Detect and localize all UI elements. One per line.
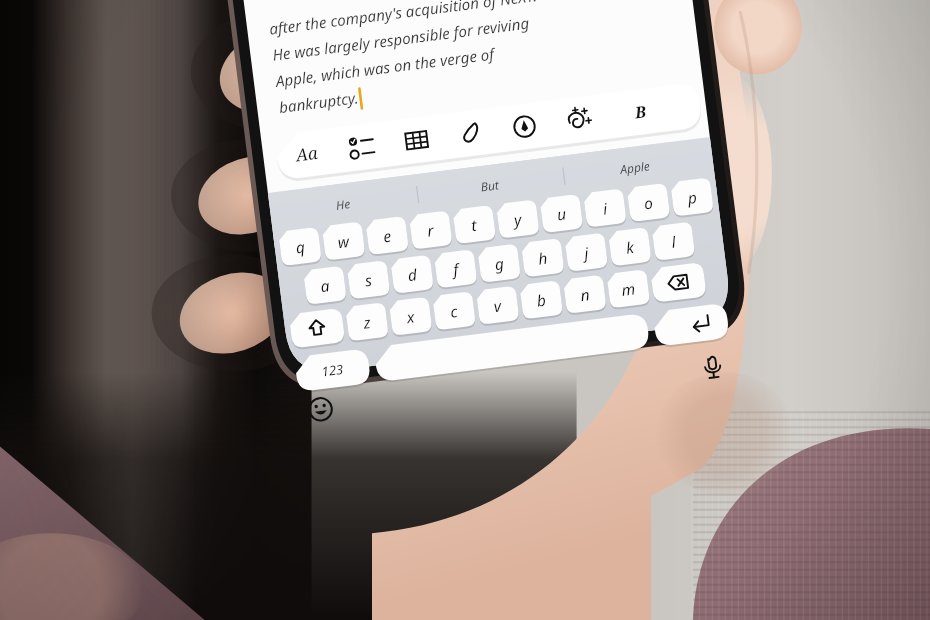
button[interactable]: Phone showing Notes app with keyboard: [0, 0, 930, 620]
